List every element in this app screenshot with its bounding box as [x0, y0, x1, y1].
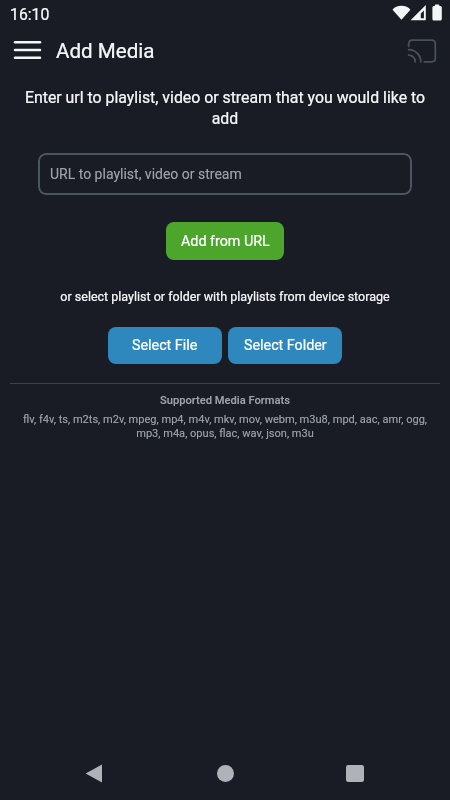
button[interactable]: Select File — [108, 327, 222, 364]
button[interactable]: Open navigation menu — [3, 29, 47, 73]
staticText: or select playlist or folder with playli… — [14, 289, 436, 304]
button[interactable]: Select Folder — [228, 327, 342, 364]
staticText: Add from URL — [181, 233, 270, 250]
staticText: Select File — [132, 337, 198, 354]
button[interactable]: Recent apps — [327, 742, 383, 800]
button[interactable]: Home — [197, 742, 253, 800]
button[interactable]: Add from URL — [166, 222, 284, 260]
button[interactable]: Cast to device — [400, 29, 444, 73]
staticText: flv, f4v, ts, m2ts, m2v, mpeg, mp4, m4v,… — [12, 413, 438, 440]
staticText: Supported Media Formats — [0, 394, 450, 407]
button[interactable]: URL to playlist, video or stream — [38, 153, 412, 195]
staticText: URL to playlist, video or stream — [50, 166, 242, 182]
staticText: Add Media — [56, 39, 155, 63]
button[interactable]: Back — [67, 742, 123, 800]
staticText: Select Folder — [244, 337, 327, 354]
staticText: 16:10 — [10, 5, 50, 24]
staticText: Enter url to playlist, video or stream t… — [11, 88, 439, 128]
